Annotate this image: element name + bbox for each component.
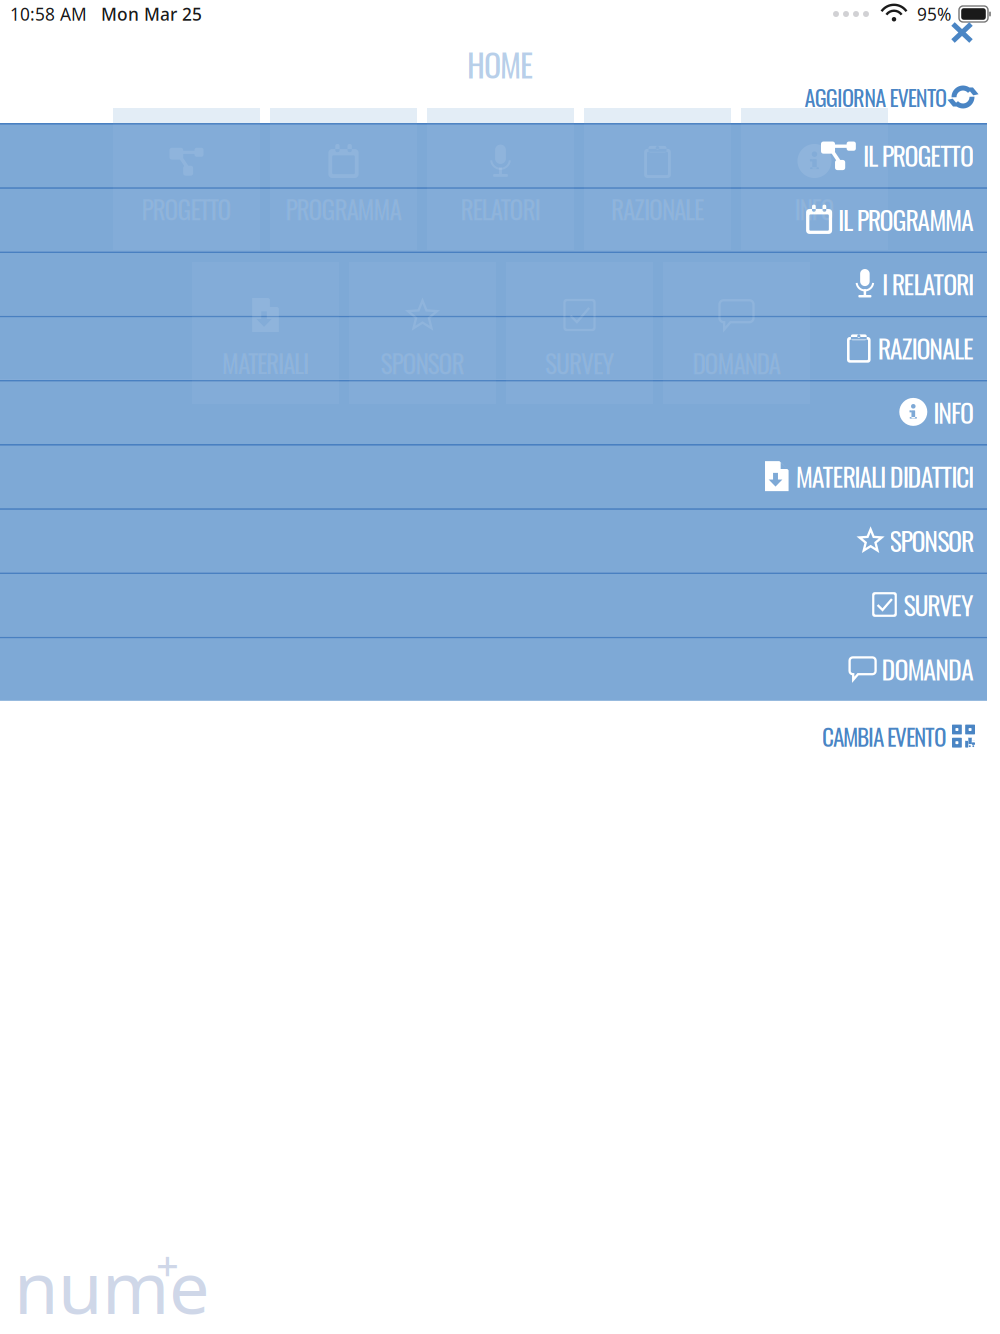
- button[interactable]: SPONSOR: [0, 508, 987, 572]
- staticText: SPONSOR: [890, 521, 974, 559]
- staticText: MATERIALI: [222, 344, 309, 381]
- staticText: SURVEY: [545, 344, 614, 381]
- staticText: DOMANDA: [692, 344, 780, 381]
- staticText: PROGETTO: [141, 190, 231, 227]
- staticText: MATERIALI: [222, 344, 309, 381]
- staticText: 95%: [917, 2, 951, 25]
- staticText: RELATORI: [460, 190, 540, 227]
- staticText: INFO: [933, 393, 974, 431]
- staticText: SURVEY: [903, 585, 974, 624]
- staticText: PROGRAMMA: [285, 190, 401, 227]
- staticText: DOMANDA: [882, 649, 974, 688]
- staticText: RAZIONALE: [878, 328, 974, 367]
- button[interactable]: CAMBIA EVENTO: [822, 715, 1000, 757]
- staticText: MATERIALI DIDATTICI: [796, 457, 974, 495]
- staticText: 10:58 AM: [10, 2, 87, 25]
- staticText: INFO: [794, 190, 834, 227]
- button[interactable]: SURVEY: [0, 572, 987, 637]
- staticText: Mon Mar 25: [101, 2, 202, 25]
- staticText: SPONSOR: [380, 344, 464, 381]
- staticText: SPONSOR: [380, 344, 464, 381]
- staticText: I RELATORI: [882, 264, 974, 303]
- button[interactable]: MATERIALI DIDATTICI: [0, 444, 987, 508]
- button[interactable]: RAZIONALE: [0, 316, 987, 380]
- staticText: nume: [14, 1238, 210, 1334]
- staticText: RELATORI: [460, 190, 540, 227]
- staticText: +: [156, 1238, 179, 1291]
- button[interactable]: IL PROGETTO: [0, 123, 987, 187]
- button[interactable]: Chiudi: [944, 15, 980, 50]
- staticText: RAZIONALE: [611, 190, 704, 227]
- staticText: CAMBIA EVENTO: [822, 719, 947, 753]
- button[interactable]: IL PROGRAMMA: [0, 187, 987, 251]
- staticText: PROGETTO: [141, 190, 231, 227]
- staticText: IL PROGRAMMA: [838, 200, 974, 238]
- staticText: SURVEY: [545, 344, 614, 381]
- button[interactable]: I RELATORI: [0, 251, 987, 316]
- staticText: INFO: [794, 190, 834, 227]
- button[interactable]: AGGIORNA EVENTO: [805, 78, 1000, 116]
- staticText: HOME: [467, 40, 533, 88]
- button[interactable]: INFO: [0, 380, 987, 444]
- staticText: RAZIONALE: [611, 190, 704, 227]
- button[interactable]: DOMANDA: [0, 637, 987, 701]
- staticText: AGGIORNA EVENTO: [805, 80, 947, 114]
- staticText: IL PROGETTO: [863, 136, 974, 174]
- staticText: DOMANDA: [692, 344, 780, 381]
- staticText: PROGRAMMA: [285, 190, 401, 227]
